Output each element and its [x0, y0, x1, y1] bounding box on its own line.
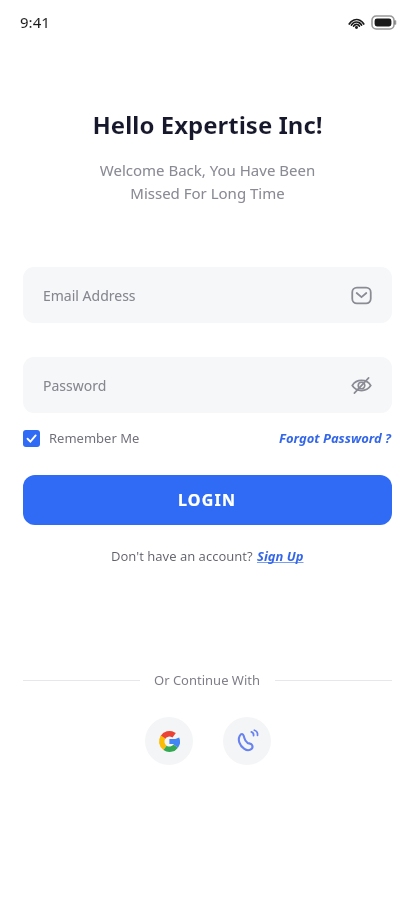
staticText: Forgot Password ?	[279, 429, 392, 447]
button[interactable]: Email Address	[23, 267, 392, 323]
staticText: Hello Expertise Inc!	[0, 108, 415, 141]
staticText: LOGIN	[178, 489, 237, 511]
button[interactable]: Continue with phone number	[223, 717, 271, 765]
button[interactable]: Sign Up	[257, 547, 304, 565]
staticText: Welcome Back, You Have Been Missed For L…	[0, 160, 415, 203]
button[interactable]: LOGIN	[23, 475, 392, 525]
staticText: Password	[43, 376, 107, 395]
button[interactable]: Continue with Google	[145, 717, 193, 765]
staticText: 9:41	[20, 12, 50, 32]
button[interactable]: Remember Me	[23, 429, 140, 447]
staticText: Or Continue With	[154, 671, 261, 689]
staticText: Remember Me	[49, 429, 140, 447]
staticText: Sign Up	[257, 547, 304, 565]
button[interactable]: Password	[23, 357, 392, 413]
staticText: Email Address	[43, 286, 136, 305]
staticText: Don't have an account?	[111, 547, 257, 565]
button[interactable]: Forgot Password ?	[279, 429, 392, 447]
